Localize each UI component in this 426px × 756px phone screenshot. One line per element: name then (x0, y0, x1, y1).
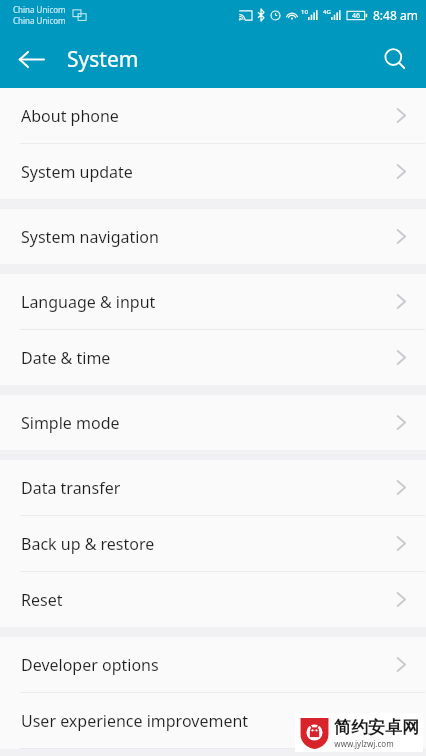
staticText: User experience improvement (21, 710, 395, 732)
button[interactable]: Language & input (0, 274, 426, 329)
staticText: 4G (323, 8, 331, 16)
staticText: China Unicom (13, 15, 66, 26)
button[interactable]: System navigation (0, 209, 426, 264)
staticText: Data transfer (21, 477, 395, 499)
staticText: Language & input (21, 291, 395, 313)
staticText: System update (21, 161, 395, 183)
staticText: www.jylzwj.com (334, 738, 394, 749)
staticText: 10 (301, 8, 308, 16)
button[interactable]: Date & time (0, 330, 426, 385)
staticText: About phone (21, 105, 395, 127)
button[interactable]: Simple mode (0, 395, 426, 450)
button[interactable]: About phone (0, 88, 426, 143)
staticText: Reset (21, 589, 395, 611)
button[interactable]: User experience improvement (0, 693, 426, 748)
staticText: China Unicom (13, 4, 66, 15)
button[interactable]: Reset (0, 572, 426, 627)
staticText: System navigation (21, 226, 395, 248)
button[interactable]: Search (372, 36, 418, 82)
staticText: Simple mode (21, 412, 395, 434)
staticText: Developer options (21, 654, 395, 676)
staticText: Back up & restore (21, 533, 395, 555)
button[interactable]: Back up & restore (0, 516, 426, 571)
staticText: Date & time (21, 347, 395, 369)
button[interactable]: Data transfer (0, 460, 426, 515)
staticText: 8:48 am (373, 7, 418, 23)
staticText: System (67, 45, 139, 74)
staticText: 简约安卓网 (334, 717, 419, 738)
button[interactable]: System update (0, 144, 426, 199)
button[interactable]: Developer options (0, 637, 426, 692)
staticText: 46 (352, 11, 361, 21)
button[interactable]: Back (8, 36, 54, 82)
